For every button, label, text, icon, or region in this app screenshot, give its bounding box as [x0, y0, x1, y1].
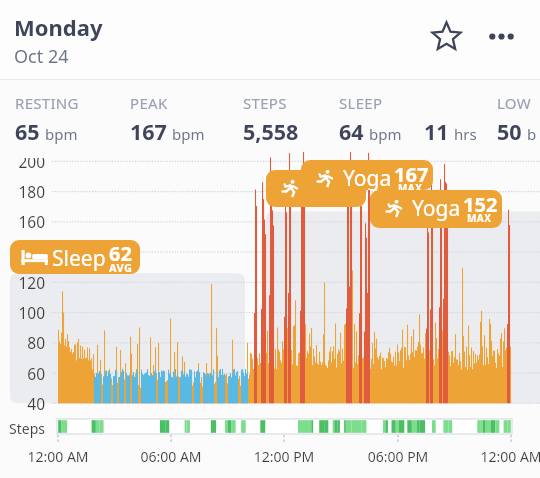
staticText: 152 [463, 191, 498, 218]
staticText: 50 [497, 117, 522, 146]
staticText: 200 [0, 158, 45, 172]
staticText: MAX [398, 181, 423, 190]
staticText: Monday [14, 12, 103, 42]
staticText: 11 [424, 117, 449, 146]
staticText: Yoga [412, 194, 461, 223]
staticText: hrs [454, 124, 477, 144]
staticText: 12:00 AM [451, 447, 540, 466]
staticText: LOW [497, 93, 531, 113]
staticText: PEAK [130, 93, 168, 113]
staticText: Steps [9, 419, 45, 438]
staticText: 06:00 PM [338, 447, 458, 466]
staticText: 120 [0, 272, 45, 293]
staticText: RESTING [15, 93, 79, 113]
staticText: 12:00 PM [224, 447, 344, 466]
staticText: AVG [109, 260, 133, 274]
staticText: Oct 24 [14, 44, 69, 69]
staticText: 160 [0, 211, 45, 232]
staticText: 64 [339, 117, 364, 146]
staticText: MAX [467, 211, 492, 225]
staticText: 06:00 AM [111, 447, 231, 466]
staticText: bpm [369, 124, 402, 144]
staticText: 80 [0, 332, 45, 353]
staticText: 5,558 [243, 117, 299, 146]
staticText: 62 [109, 240, 132, 267]
staticText: 167 [130, 117, 167, 146]
staticText: Yoga [343, 164, 392, 190]
button[interactable]: More options [478, 13, 524, 59]
staticText: 180 [0, 181, 45, 202]
button[interactable]: Workout [266, 170, 366, 207]
staticText: 65 [15, 117, 40, 146]
staticText: STEPS [243, 93, 287, 113]
staticText: 100 [0, 302, 45, 323]
button[interactable]: Sleep [10, 240, 140, 274]
button[interactable]: Favorite [423, 13, 469, 59]
staticText: bpm [172, 124, 205, 144]
staticText: 12:00 AM [0, 447, 118, 466]
staticText: b [527, 124, 537, 144]
staticText: 60 [0, 363, 45, 384]
button[interactable]: Yoga [370, 190, 502, 228]
staticText: 40 [0, 393, 45, 412]
staticText: bpm [45, 124, 78, 144]
button[interactable]: Yoga [301, 160, 433, 190]
staticText: Sleep [52, 244, 106, 273]
staticText: 167 [394, 161, 429, 188]
staticText: SLEEP [339, 93, 383, 113]
